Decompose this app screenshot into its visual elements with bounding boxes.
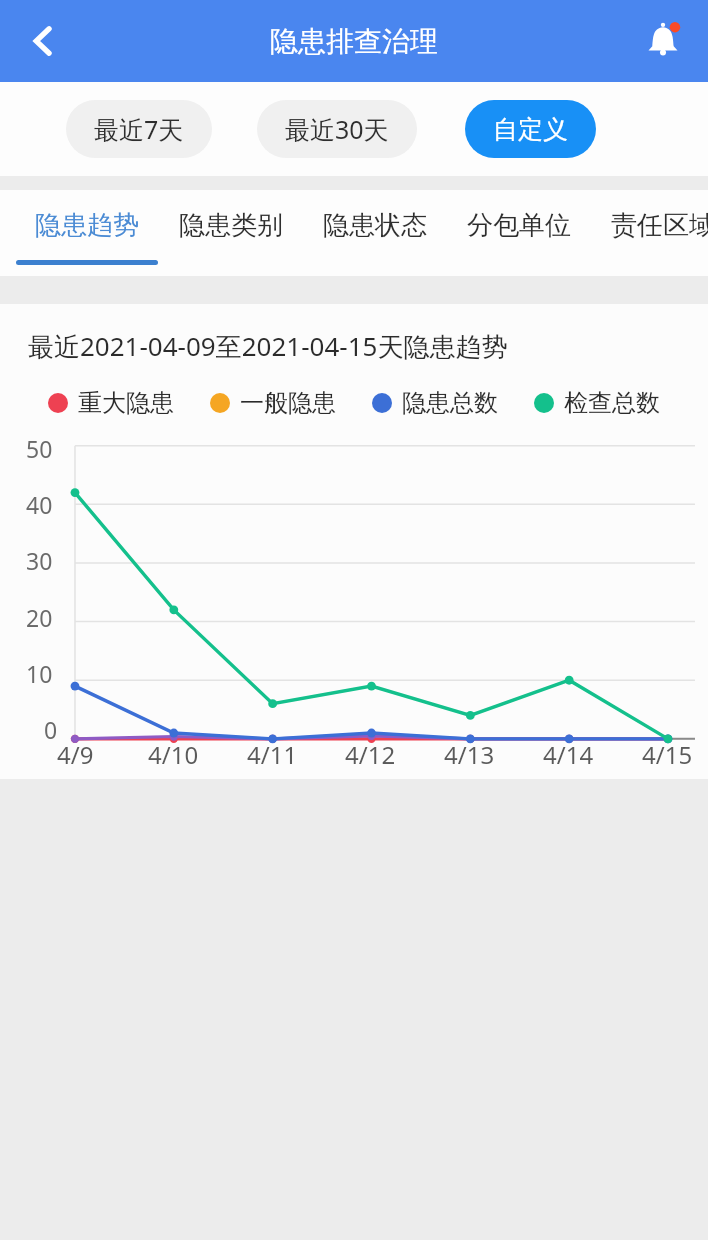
staticText: 隐患总数	[402, 388, 498, 418]
staticText: 检查总数	[564, 388, 660, 418]
button[interactable]: 隐患状态	[304, 190, 446, 276]
button[interactable]: 自定义	[465, 100, 596, 158]
button[interactable]: Back	[12, 10, 74, 72]
staticText: 50	[26, 433, 53, 464]
staticText: 隐患排查治理	[270, 24, 438, 59]
staticText: 最近7天	[94, 112, 184, 146]
staticText: 责任区域	[611, 209, 708, 242]
staticText: 一般隐患	[240, 388, 336, 418]
button[interactable]: 隐患类别	[160, 190, 302, 276]
button[interactable]: 责任区域	[592, 190, 708, 276]
staticText: 40	[26, 489, 53, 520]
staticText: 最近2021-04-09至2021-04-15天隐患趋势	[28, 328, 508, 364]
staticText: 4/12	[345, 738, 396, 771]
staticText: 自定义	[493, 114, 568, 145]
staticText: 10	[26, 658, 53, 689]
staticText: 分包单位	[467, 209, 571, 242]
staticText: 4/15	[642, 738, 693, 771]
staticText: 4/14	[543, 738, 594, 771]
staticText: 重大隐患	[78, 388, 174, 418]
staticText: 0	[44, 714, 58, 745]
staticText: 4/10	[148, 738, 199, 771]
staticText: 4/11	[247, 738, 298, 771]
button[interactable]: 分包单位	[448, 190, 590, 276]
staticText: 30	[26, 545, 53, 576]
staticText: 隐患趋势	[35, 209, 139, 242]
staticText: 最近30天	[285, 112, 389, 146]
button[interactable]: 隐患趋势	[16, 190, 158, 276]
staticText: 4/9	[57, 738, 94, 771]
button[interactable]: Notifications	[632, 10, 694, 72]
button[interactable]: 最近7天	[66, 100, 212, 158]
staticText: 隐患状态	[323, 209, 427, 242]
staticText: 隐患类别	[179, 209, 283, 242]
button[interactable]: 最近30天	[257, 100, 417, 158]
staticText: 4/13	[444, 738, 495, 771]
staticText: 20	[26, 602, 53, 633]
